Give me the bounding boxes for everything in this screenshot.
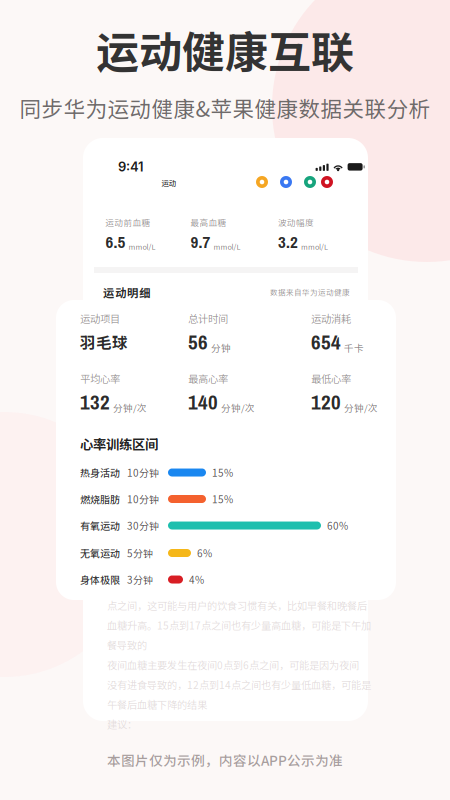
staticText: 最高血糖 [190,216,226,228]
staticText: 4% [189,572,204,587]
staticText: 运动健康互联 [96,18,354,80]
staticText: mmol/L [128,241,155,252]
staticText: 60% [327,518,348,533]
staticText: 运动明细 [103,284,151,301]
staticText: 56 [188,328,208,356]
staticText: 热身活动 [80,465,120,480]
button[interactable]: 血糖 [256,176,268,188]
staticText: 3分钟 [127,572,153,587]
staticText: 点之间，这可能与用户的饮食习惯有关，比如早餐和晚餐后 [107,598,367,613]
staticText: 无氧运动 [80,546,120,560]
staticText: 15% [212,465,233,480]
staticText: mmol/L [213,241,240,252]
staticText: 15% [212,492,233,506]
staticText: mmol/L [301,241,328,252]
staticText: 3.2 [278,230,298,253]
staticText: 运动前血糖 [105,216,150,228]
staticText: 心率训练区间 [80,434,158,453]
staticText: 分钟 [211,341,231,355]
staticText: 餐导致的 [107,637,147,652]
staticText: 分钟/次 [113,401,147,415]
staticText: 654 [311,328,341,356]
staticText: 10分钟 [127,465,159,480]
staticText: 9:41 [118,159,143,175]
staticText: 午餐后血糖下降的结果 [107,697,207,712]
staticText: 千卡 [344,341,364,355]
staticText: 波动幅度 [278,216,314,228]
staticText: 燃烧脂肪 [80,492,120,506]
staticText: 夜间血糖主要发生在夜间0点到6点之间，可能是因为夜间 [107,657,359,672]
staticText: 132 [80,388,110,416]
staticText: 数据来自华为运动健康 [270,286,350,297]
staticText: 羽毛球 [80,331,128,353]
staticText: 最低心率 [311,371,351,386]
staticText: 没有进食导致的，12点到14点之间也有少量低血糖，可能是 [107,677,371,692]
button[interactable]: 饮食 [280,176,292,188]
staticText: 运动 [161,177,175,188]
staticText: 有氧运动 [80,518,120,533]
staticText: 9.7 [190,230,210,253]
staticText: 运动项目 [80,311,120,326]
staticText: 建议： [107,717,137,731]
button[interactable]: 运动 [304,176,316,188]
staticText: 6% [197,546,212,560]
staticText: 平均心率 [80,371,120,386]
staticText: 血糖升高。15点到17点之间也有少量高血糖，可能是下午加 [107,618,371,633]
staticText: 最高心率 [188,371,228,386]
staticText: 运动消耗 [311,311,351,326]
staticText: 本图片仅为示例，内容以APP公示为准 [107,750,343,770]
staticText: 分钟/次 [221,401,255,415]
staticText: 身体极限 [80,572,120,587]
staticText: 同步华为运动健康&苹果健康数据关联分析 [19,92,430,123]
staticText: 5分钟 [127,546,153,560]
staticText: 6.5 [105,230,125,253]
staticText: 总计时间 [188,311,228,326]
staticText: 30分钟 [127,518,159,533]
staticText: 120 [311,388,341,416]
button[interactable]: 用药 [321,176,333,188]
staticText: 140 [188,388,218,416]
staticText: 分钟/次 [344,401,378,415]
staticText: 10分钟 [127,492,159,506]
